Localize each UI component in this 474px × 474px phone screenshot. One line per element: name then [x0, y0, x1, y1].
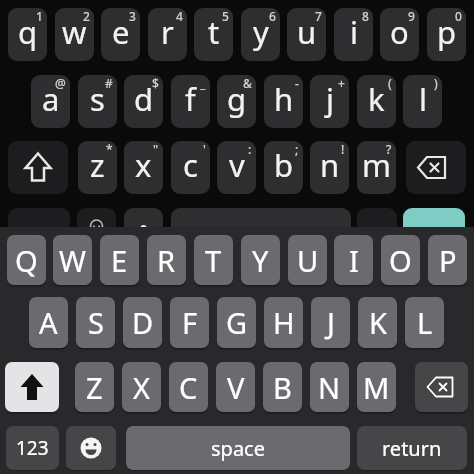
button[interactable]: m [357, 141, 396, 194]
button[interactable]: z [78, 141, 117, 194]
button[interactable]: x [124, 141, 163, 194]
staticText: q [18, 11, 38, 53]
staticText: 123 [16, 435, 49, 461]
button[interactable]: g [217, 75, 256, 128]
button[interactable]: T [194, 235, 233, 285]
button[interactable] [77, 208, 116, 261]
button[interactable]: v [217, 141, 256, 194]
staticText: g [227, 78, 247, 120]
button[interactable]: r [148, 8, 187, 61]
button[interactable]: b [264, 141, 303, 194]
button[interactable]: y [241, 8, 280, 61]
button[interactable]: X [122, 362, 161, 412]
button[interactable]: n [310, 141, 349, 194]
button[interactable] [415, 362, 468, 412]
button[interactable] [66, 426, 116, 470]
button[interactable]: l [403, 75, 442, 128]
staticText: 9 [408, 8, 415, 24]
button[interactable]: B [263, 362, 302, 412]
staticText: 0 [455, 8, 462, 24]
staticText: 5 [222, 8, 229, 24]
staticText: W [59, 241, 86, 280]
staticText: p [437, 11, 457, 53]
button[interactable]: c [171, 141, 210, 194]
staticText: k [368, 78, 385, 120]
staticText: 7 [315, 8, 322, 24]
staticText: e [112, 11, 130, 53]
button[interactable]: u [287, 8, 326, 61]
button[interactable]: k [357, 75, 396, 128]
button[interactable]: P [428, 235, 467, 285]
staticText: X [133, 368, 150, 407]
button[interactable]: d [124, 75, 163, 128]
button[interactable]: V [216, 362, 255, 412]
staticText: M [363, 368, 390, 407]
button[interactable] [403, 208, 465, 261]
staticText: d [134, 78, 154, 120]
button[interactable]: Z [75, 362, 114, 412]
button[interactable]: 123 [6, 426, 59, 470]
button[interactable]: space [126, 426, 350, 470]
staticText: & [243, 75, 252, 91]
staticText: y [253, 11, 269, 53]
button[interactable]: h [264, 75, 303, 128]
button[interactable]: E [100, 235, 139, 285]
button[interactable]: W [53, 235, 92, 285]
button[interactable]: e [101, 8, 140, 61]
button[interactable]: f [171, 75, 210, 128]
button[interactable] [357, 208, 397, 261]
staticText: i [350, 11, 358, 53]
button[interactable]: s [78, 75, 117, 128]
button[interactable]: w [55, 8, 94, 61]
staticText: K [369, 303, 387, 342]
button[interactable]: G [217, 297, 256, 348]
staticText: ' [203, 141, 206, 157]
staticText: A [39, 303, 58, 342]
staticText: s [90, 78, 105, 120]
button[interactable] [8, 208, 70, 261]
button[interactable]: a [31, 75, 70, 128]
button[interactable]: A [29, 297, 68, 348]
staticText: f [185, 78, 196, 120]
button[interactable] [124, 208, 163, 261]
button[interactable]: C [169, 362, 208, 412]
staticText: B [273, 368, 292, 407]
staticText: o [390, 11, 409, 53]
staticText: Z [86, 368, 103, 407]
button[interactable]: I [334, 235, 373, 285]
button[interactable]: K [358, 297, 397, 348]
button[interactable]: N [310, 362, 349, 412]
button[interactable]: q [8, 8, 47, 61]
staticText: ) [434, 75, 438, 91]
button[interactable] [8, 141, 68, 194]
button[interactable]: return [357, 426, 467, 470]
button[interactable]: Q [7, 235, 46, 285]
button[interactable] [406, 141, 466, 194]
staticText: l [419, 78, 427, 120]
button[interactable]: H [264, 297, 303, 348]
button[interactable] [171, 208, 351, 261]
button[interactable]: o [380, 8, 419, 61]
staticText: I [349, 241, 359, 280]
button[interactable]: R [147, 235, 186, 285]
button[interactable]: t [194, 8, 233, 61]
button[interactable]: p [427, 8, 466, 61]
button[interactable]: j [310, 75, 349, 128]
button[interactable]: U [288, 235, 327, 285]
staticText: 6 [269, 8, 276, 24]
button[interactable]: L [405, 297, 444, 348]
staticText: u [297, 11, 317, 53]
button[interactable]: J [311, 297, 350, 348]
button[interactable]: D [123, 297, 162, 348]
button[interactable]: i [334, 8, 373, 61]
button[interactable]: S [76, 297, 115, 348]
staticText: r [161, 11, 174, 53]
button[interactable]: Y [241, 235, 280, 285]
button[interactable]: M [357, 362, 396, 412]
staticText: n [320, 144, 340, 186]
staticText: 2 [83, 8, 90, 24]
staticText: C [179, 368, 198, 407]
button[interactable]: F [170, 297, 209, 348]
button[interactable] [5, 362, 59, 412]
button[interactable]: O [381, 235, 420, 285]
